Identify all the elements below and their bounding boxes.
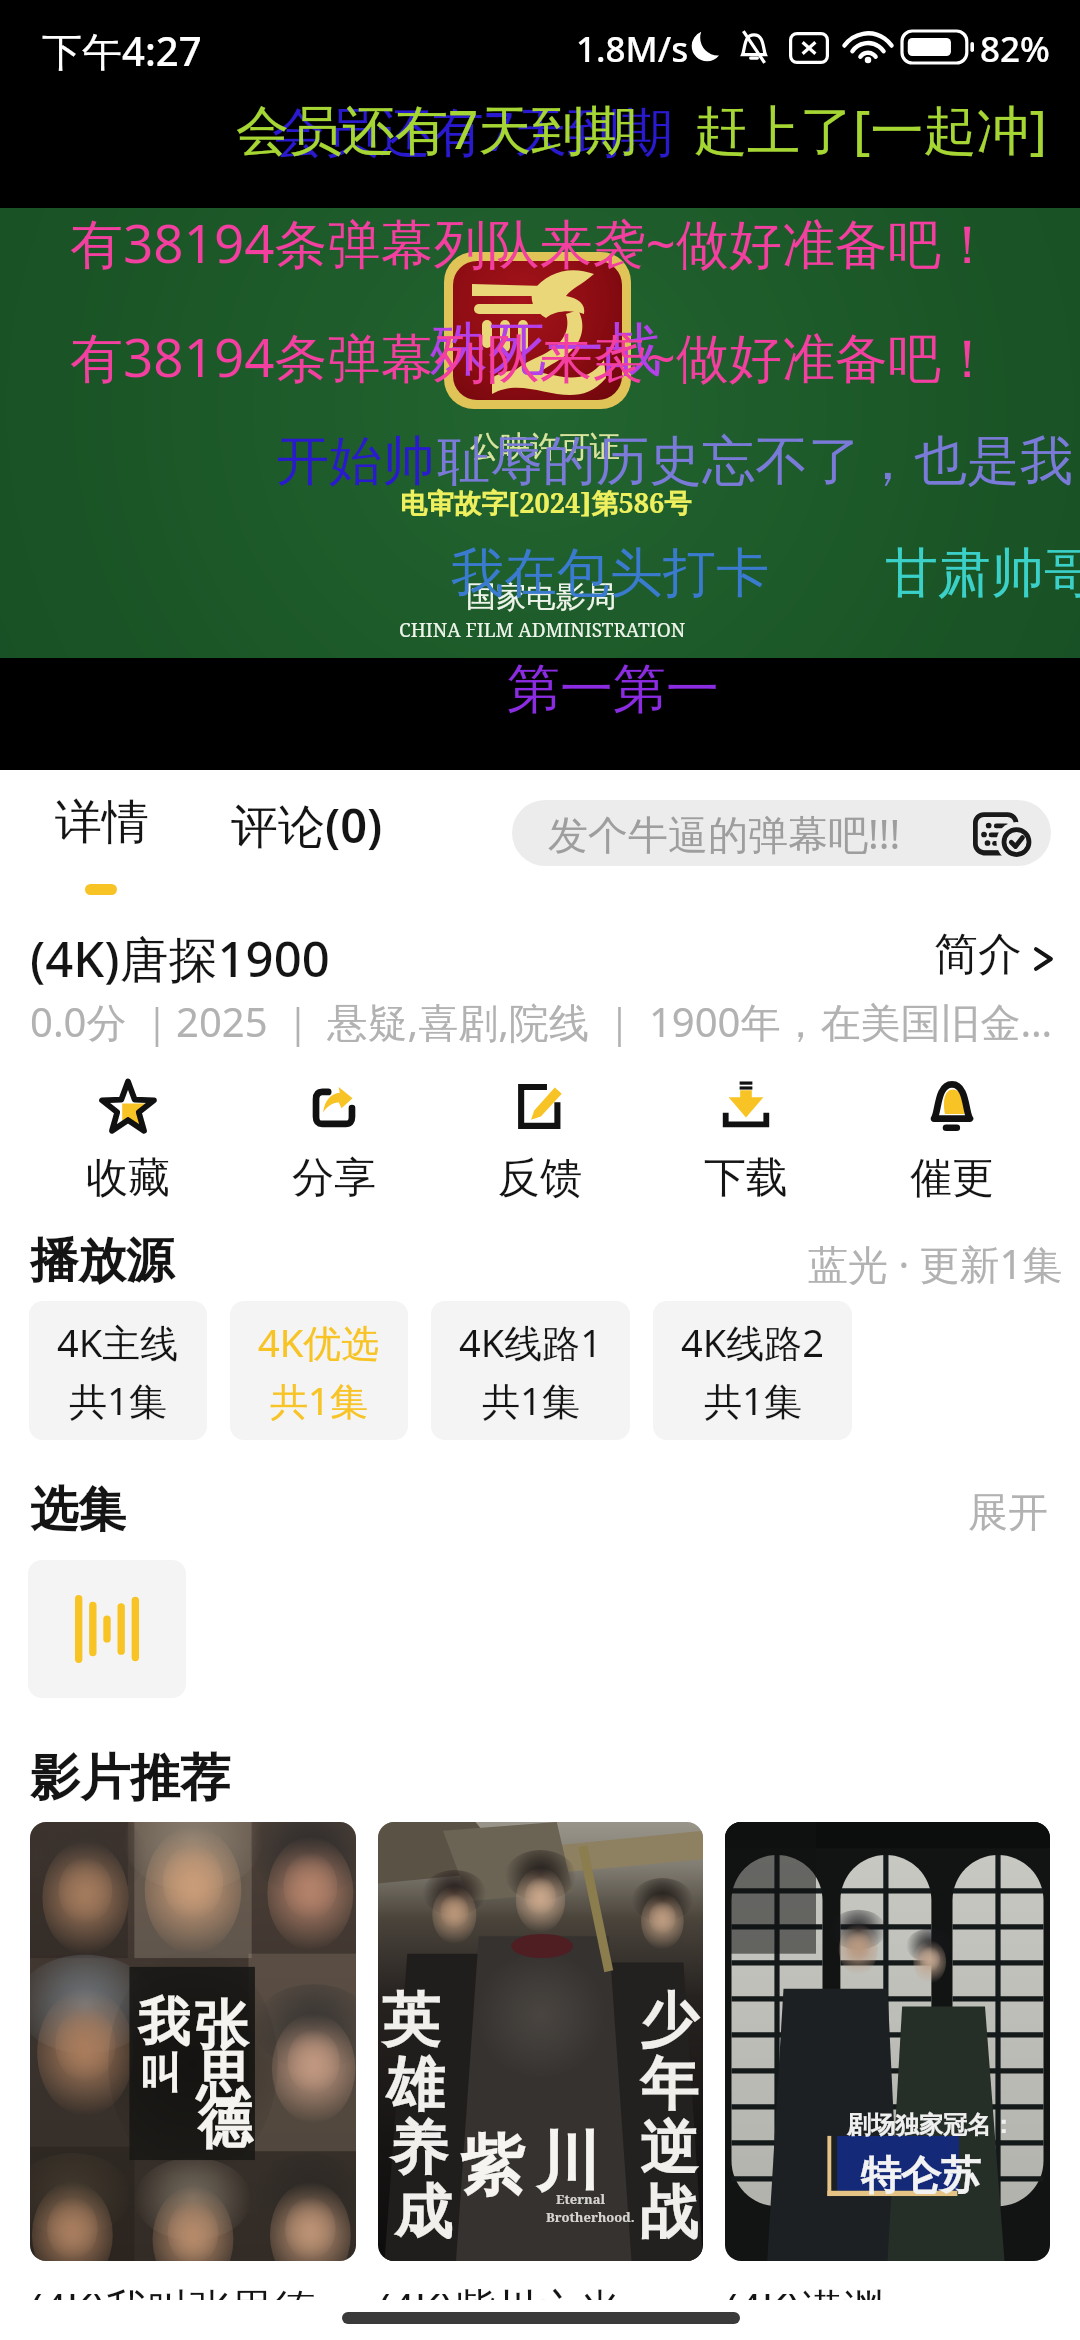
staticText: 雄 (386, 2048, 444, 2121)
staticText: 发个牛逼的弹幕吧!!! (548, 806, 901, 861)
staticText: 我在包头打卡 (451, 540, 769, 607)
staticText: 收藏 (86, 1152, 170, 1205)
staticText: 有38194条弹幕列队来袭~做好准备吧！ (70, 320, 994, 392)
button[interactable]: 下载 (643, 1078, 849, 1205)
staticText: 特仑苏 (861, 2150, 981, 2200)
staticText: 评论(0) (231, 793, 383, 857)
staticText: 82% (980, 25, 1050, 73)
button[interactable]: 评论(0) (224, 790, 424, 890)
button[interactable]: 反馈 (437, 1078, 643, 1205)
button[interactable]: 详情 (48, 790, 158, 890)
button[interactable]: 4K优选 (230, 1301, 408, 1440)
button[interactable]: 简介 (920, 925, 1060, 991)
staticText: 德 (198, 2090, 252, 2158)
staticText: (4K)唐探1900 (30, 925, 330, 992)
staticText: 有38194条弹幕列队来袭~做好准备吧！ (70, 206, 994, 278)
staticText: 反馈 (498, 1152, 582, 1205)
staticText: (4K)我叫张思德 (30, 2279, 316, 2336)
staticText: 影片推荐 (30, 1747, 230, 1810)
staticText: (4K)紫川之光 (378, 2279, 622, 2336)
staticText: 英 (382, 1984, 440, 2057)
staticText: (4K)潜渊 (725, 2279, 885, 2336)
staticText: 4K线路1 (459, 1316, 602, 1368)
staticText: 选集 (30, 1480, 126, 1540)
button[interactable]: 4K主线 (29, 1301, 207, 1440)
staticText: Brotherhood. (546, 2208, 635, 2226)
staticText: 紫 (460, 2126, 524, 2207)
staticText: Eternal (556, 2190, 606, 2208)
staticText: 第一第一 (507, 656, 719, 723)
staticText: 战 (640, 2176, 698, 2249)
staticText: 蓝光 · 更新1集 (808, 1236, 1063, 1291)
button[interactable]: 剧场独家冠名： (725, 1822, 1050, 2336)
staticText: CHINA FILM ADMINISTRATION (399, 617, 686, 643)
staticText: 开始帅 (276, 428, 435, 495)
staticText: 下午4:27 (42, 23, 202, 78)
staticText: 我 (138, 1990, 190, 2056)
button[interactable]: 4K线路2 (653, 1301, 852, 1440)
staticText: 展开 (968, 1487, 1048, 1537)
staticText: 电审故字[2024]第586号 (400, 484, 692, 521)
button[interactable]: 收藏 (25, 1078, 231, 1205)
staticText: 简介 (934, 927, 1022, 982)
staticText: 逆 (640, 2112, 698, 2185)
staticText: 共1集 (270, 1374, 368, 1426)
staticText: 张 (194, 1992, 248, 2060)
staticText: 剧场独家冠名： (847, 2110, 1015, 2140)
staticText: 少 (640, 1984, 698, 2057)
staticText: 播放源 (30, 1231, 174, 1291)
staticText: 成 (394, 2176, 452, 2249)
staticText: 会员还有7天到期 (236, 92, 638, 164)
staticText: 耻辱的历史忘不了，也是我 (437, 428, 1073, 495)
staticText: 1.8M/s (576, 25, 689, 73)
staticText: 4K主线 (57, 1316, 179, 1368)
staticText: 国家电影局 (466, 578, 616, 616)
staticText: 共1集 (69, 1374, 167, 1426)
staticText: 思 (196, 2044, 250, 2112)
staticText: 公映许可证 (470, 428, 620, 466)
staticText: 催更 (910, 1152, 994, 1205)
button[interactable]: 我 (30, 1822, 356, 2336)
staticText: 共1集 (704, 1374, 802, 1426)
staticText: 叫 (140, 2048, 182, 2101)
staticText: 分享 (292, 1152, 376, 1205)
button[interactable]: 展开 (960, 1478, 1056, 1540)
staticText: 0.0分 ｜2025 ｜ 悬疑,喜剧,院线 ｜ 1900年，在美国旧金… (30, 994, 1060, 1049)
button[interactable]: 弹幕设置 (973, 807, 1031, 859)
staticText: 赶上了[一起冲] (694, 92, 1047, 164)
button[interactable]: 发个牛逼的弹幕吧!!! (512, 800, 1051, 866)
button[interactable]: 英 (378, 1822, 703, 2336)
staticText: 殊死一战 (430, 313, 662, 386)
button[interactable]: 催更 (849, 1078, 1055, 1205)
staticText: 4K优选 (258, 1316, 380, 1368)
button[interactable]: 4K线路1 (431, 1301, 630, 1440)
staticText: 详情 (55, 793, 149, 852)
button[interactable]: 分享 (231, 1078, 437, 1205)
staticText: 共1集 (482, 1374, 580, 1426)
staticText: 会员还有7天到期 (272, 94, 674, 166)
staticText: 年 (640, 2048, 698, 2121)
button[interactable]: 第1集 (28, 1560, 186, 1698)
staticText: 4K线路2 (681, 1316, 824, 1368)
staticText: 甘肃帅哥 (885, 540, 1080, 607)
staticText: 川 (536, 2122, 600, 2203)
staticText: 下载 (704, 1152, 788, 1205)
staticText: 养 (390, 2112, 448, 2185)
